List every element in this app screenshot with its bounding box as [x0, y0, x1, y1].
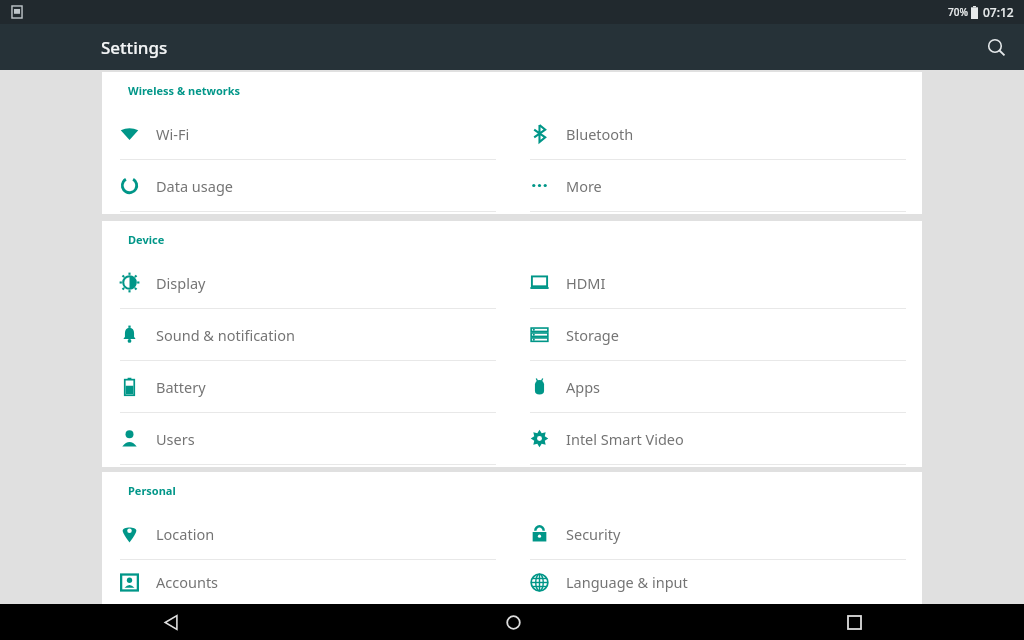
staticText: Wireless & networks	[128, 83, 241, 98]
button[interactable]: Search	[976, 27, 1016, 67]
button[interactable]: Storage	[512, 309, 922, 361]
staticText: Intel Smart Video	[566, 429, 684, 449]
staticText: Wi-Fi	[156, 124, 190, 144]
staticText: Battery	[156, 377, 206, 397]
button[interactable]: Users	[102, 413, 512, 465]
button[interactable]: Location	[102, 508, 512, 560]
staticText: 70%	[948, 5, 968, 19]
button[interactable]: HDMI	[512, 257, 922, 309]
staticText: Display	[156, 273, 206, 293]
staticText: Location	[156, 524, 215, 544]
staticText: Settings	[101, 36, 168, 59]
button[interactable]: Security	[512, 508, 922, 560]
button[interactable]: Recent apps	[832, 604, 876, 640]
staticText: HDMI	[566, 273, 606, 293]
button[interactable]: Display	[102, 257, 512, 309]
button[interactable]: Accounts	[102, 560, 512, 604]
button[interactable]: Wi-Fi	[102, 108, 512, 160]
staticText: Security	[566, 524, 621, 544]
staticText: Accounts	[156, 572, 219, 592]
button[interactable]: Sound & notification	[102, 309, 512, 361]
staticText: Storage	[566, 325, 619, 345]
staticText: Apps	[566, 377, 601, 397]
staticText: Data usage	[156, 176, 233, 196]
staticText: Bluetooth	[566, 124, 634, 144]
staticText: 07:12	[983, 4, 1014, 20]
button[interactable]: Battery	[102, 361, 512, 413]
button[interactable]: Bluetooth	[512, 108, 922, 160]
button[interactable]: Back	[149, 604, 193, 640]
button[interactable]: Data usage	[102, 160, 512, 212]
button[interactable]: Apps	[512, 361, 922, 413]
button[interactable]: Intel Smart Video	[512, 413, 922, 465]
staticText: Personal	[128, 483, 176, 498]
staticText: More	[566, 176, 602, 196]
staticText: Language & input	[566, 572, 688, 592]
staticText: Device	[128, 232, 165, 247]
button[interactable]: Language & input	[512, 560, 922, 604]
staticText: Users	[156, 429, 195, 449]
button[interactable]: Home	[491, 604, 535, 640]
button[interactable]: More	[512, 160, 922, 212]
staticText: Sound & notification	[156, 325, 295, 345]
